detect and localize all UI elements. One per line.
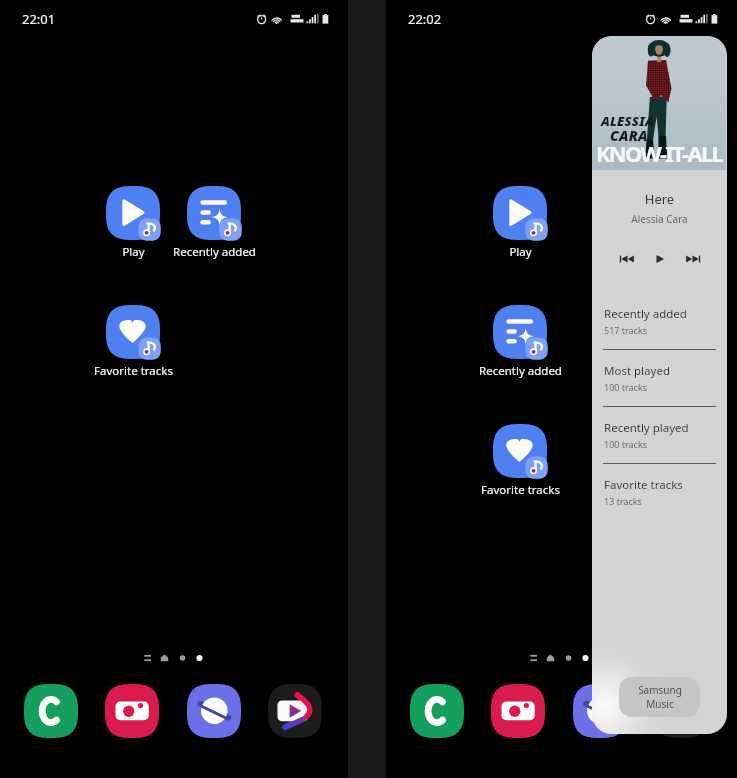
staticText: 100 tracks [604, 381, 648, 393]
staticText: Recently played [604, 420, 689, 436]
staticText: Recently added [604, 306, 687, 322]
staticText: ALESSIA [601, 112, 654, 130]
button[interactable]: Camera [491, 684, 545, 738]
button[interactable]: Internet [573, 684, 627, 738]
staticText: 517 tracks [604, 324, 648, 336]
button[interactable]: Play [106, 186, 160, 240]
button[interactable]: Favorite tracks [106, 305, 160, 359]
staticText: 22:02 [408, 10, 442, 28]
button[interactable]: Recently added [592, 306, 727, 363]
button[interactable]: Camera [105, 684, 159, 738]
button[interactable]: Favorite tracks [493, 424, 547, 478]
button[interactable]: Play [648, 247, 672, 271]
button[interactable]: Previous track [615, 247, 639, 271]
staticText: 100 tracks [604, 438, 648, 450]
button[interactable]: Recently added [493, 305, 547, 359]
staticText: Most played [604, 363, 670, 379]
staticText: Recently added [173, 244, 256, 260]
staticText: Recently added [479, 363, 562, 379]
button[interactable]: YouTube Music [268, 684, 322, 738]
staticText: 13 tracks [604, 495, 642, 507]
staticText: Favorite tracks [481, 482, 560, 498]
staticText: Alessia Cara [592, 212, 727, 226]
button[interactable]: Recently added [187, 186, 241, 240]
button[interactable]: Most played [592, 363, 727, 420]
button[interactable]: Recently played [592, 420, 727, 477]
staticText: Here [592, 190, 727, 208]
button[interactable]: Favorite tracks [592, 477, 727, 507]
button[interactable]: Next track [681, 247, 705, 271]
staticText: Favorite tracks [604, 477, 683, 493]
staticText: 22:01 [22, 10, 56, 28]
button[interactable]: Phone [24, 684, 78, 738]
staticText: Play [122, 244, 145, 260]
button[interactable]: YouTube Music [654, 684, 708, 738]
staticText: Favorite tracks [94, 363, 173, 379]
button[interactable]: Internet [187, 684, 241, 738]
button[interactable]: Phone [410, 684, 464, 738]
staticText: Play [509, 244, 532, 260]
button[interactable]: Samsung Music [619, 677, 700, 717]
staticText: CARA [610, 126, 648, 145]
button[interactable]: Play [493, 186, 547, 240]
staticText: KNOW-IT-ALL [596, 138, 722, 168]
staticText: Samsung Music [638, 683, 682, 711]
